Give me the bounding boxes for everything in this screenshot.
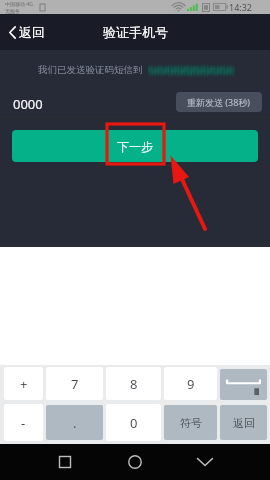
staticText: . [73, 414, 77, 432]
staticText: 0000 [13, 95, 43, 113]
button[interactable]: + [4, 367, 43, 400]
button[interactable]: - [4, 404, 43, 441]
button[interactable]: 7 [46, 367, 103, 400]
staticText: 验证手机号 [103, 24, 168, 40]
staticText: 7 [71, 375, 79, 393]
staticText: 8 [130, 375, 138, 393]
other: Hide keyboard [220, 369, 267, 400]
button[interactable]: Back [190, 447, 220, 477]
button[interactable]: 返回 [220, 405, 267, 440]
staticText: 下一步 [117, 139, 153, 154]
button[interactable]: 返回 [0, 14, 55, 50]
staticText: 14:32 [229, 1, 253, 13]
button[interactable]: 重新发送 (38秒) [176, 92, 262, 112]
button[interactable]: . [46, 405, 103, 440]
button[interactable]: 8 [106, 367, 161, 400]
staticText: 中国移动 4G [5, 1, 33, 8]
button[interactable]: 符号 [164, 405, 217, 440]
button[interactable]: Recents [50, 447, 80, 477]
button[interactable]: 下一步 [12, 130, 258, 162]
staticText: 9 [187, 375, 195, 393]
button[interactable]: 9 [164, 367, 217, 400]
staticText: 我们已发送验证码短信到 [38, 64, 143, 76]
staticText: - [21, 414, 26, 432]
staticText: 0 [130, 414, 138, 432]
button[interactable]: Hide keyboard [220, 369, 267, 400]
staticText: 符号 [180, 416, 202, 430]
staticText: 返回 [19, 24, 45, 40]
staticText: 返回 [233, 416, 255, 430]
staticText: + [20, 375, 28, 393]
button[interactable]: Home [120, 447, 150, 477]
button[interactable]: 0 [106, 404, 161, 441]
staticText: 重新发送 (38秒) [187, 96, 251, 108]
staticText: 无服务 [5, 8, 20, 14]
